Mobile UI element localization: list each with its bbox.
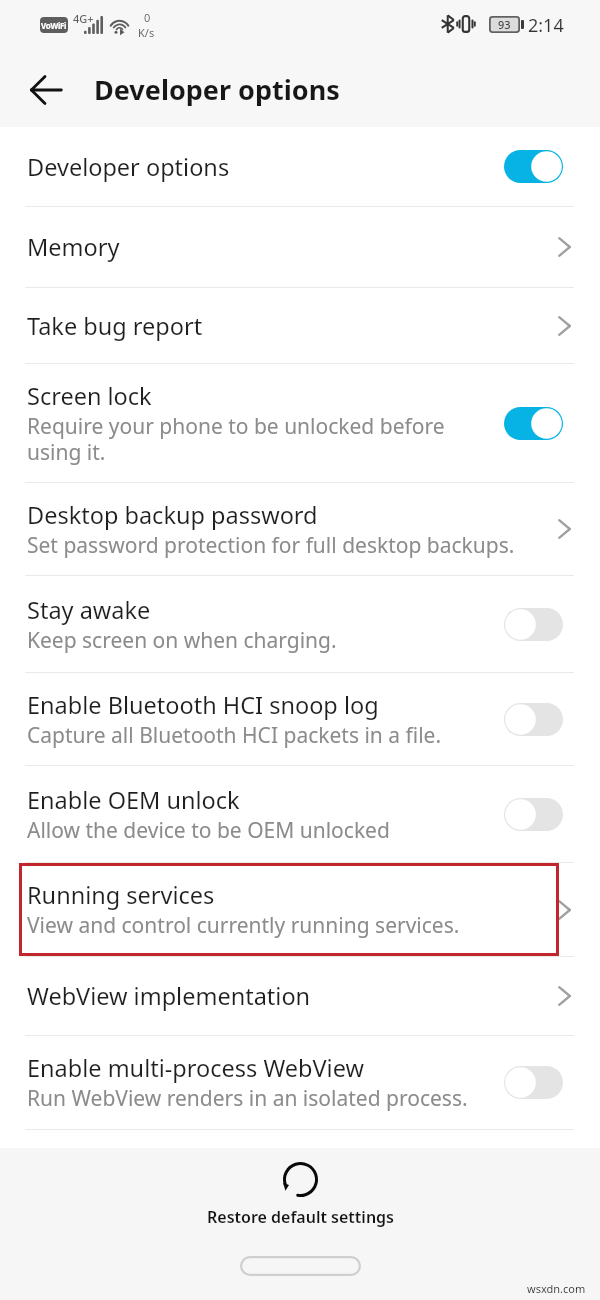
staticText: K/s [138, 25, 155, 40]
button[interactable]: Screen lock [0, 364, 600, 482]
button[interactable]: Restore default settings [207, 1162, 394, 1228]
staticText: Set password protection for full desktop… [27, 531, 515, 560]
button[interactable]: Switch off [504, 798, 563, 831]
staticText: Enable multi-process WebView [27, 1052, 364, 1084]
staticText: View and control currently running servi… [27, 911, 460, 940]
button[interactable]: Enable multi-process WebView [0, 1036, 600, 1129]
staticText: Enable OEM unlock [27, 784, 240, 816]
button[interactable]: Switch on [504, 150, 563, 183]
staticText: Restore default settings [207, 1206, 394, 1228]
staticText: WebView implementation [27, 980, 551, 1012]
button[interactable]: Back [14, 58, 78, 122]
button[interactable]: WebView implementation [0, 957, 600, 1035]
button[interactable]: Desktop backup password [0, 483, 600, 575]
staticText: Screen lock [27, 380, 152, 412]
staticText: Allow the device to be OEM unlocked [27, 816, 390, 845]
button[interactable]: Switch off [504, 1066, 563, 1099]
staticText: Developer options [94, 71, 340, 108]
staticText: Capture all Bluetooth HCI packets in a f… [27, 721, 442, 750]
staticText: Enable Bluetooth HCI snoop log [27, 689, 379, 721]
staticText: Memory [27, 231, 551, 263]
staticText: wsxdn.com [527, 1281, 586, 1296]
staticText: Stay awake [27, 594, 151, 626]
staticText: Developer options [27, 151, 504, 183]
staticText: Take bug report [27, 310, 551, 342]
button[interactable]: Switch off [504, 703, 563, 736]
button[interactable]: Running services [0, 863, 600, 956]
staticText: 0 [144, 10, 151, 25]
staticText: Running services [27, 879, 215, 911]
button[interactable]: Stay awake [0, 576, 600, 672]
button[interactable]: Enable Bluetooth HCI snoop log [0, 673, 600, 765]
staticText: 2:14 [528, 13, 564, 38]
staticText: Desktop backup password [27, 499, 318, 531]
button[interactable]: Enable OEM unlock [0, 766, 600, 862]
button[interactable]: Switch off [504, 608, 563, 641]
staticText: 93 [498, 17, 511, 32]
staticText: VoWiFi [41, 20, 67, 31]
staticText: Run WebView renders in an isolated proce… [27, 1084, 468, 1113]
button[interactable]: Take bug report [0, 288, 600, 363]
button[interactable]: Memory [0, 207, 600, 287]
button[interactable]: Developer options [0, 127, 600, 206]
button[interactable]: Switch on [504, 407, 563, 440]
staticText: 4G+ [73, 11, 94, 26]
staticText: Require your phone to be unlocked before… [27, 412, 504, 467]
staticText: Keep screen on when charging. [27, 626, 337, 655]
